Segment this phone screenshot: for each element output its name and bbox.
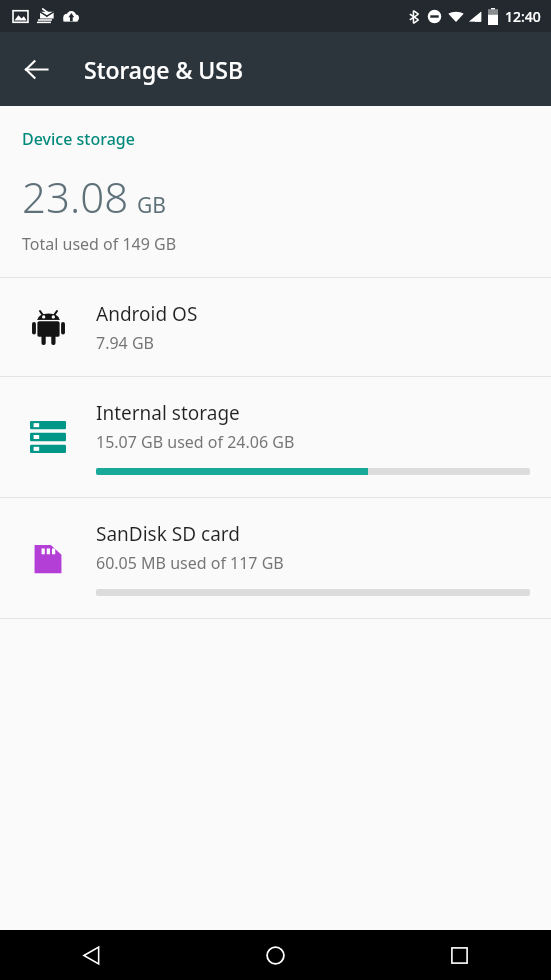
staticText: 60.05 MB used of 117 GB (96, 552, 284, 574)
staticText: Device storage (22, 128, 135, 150)
button[interactable]: SanDisk SD card (0, 498, 551, 618)
button[interactable]: Android OS (0, 278, 551, 376)
staticText: 12:40 (505, 7, 541, 26)
button[interactable]: Back (0, 930, 183, 980)
staticText: SanDisk SD card (96, 521, 240, 547)
staticText: 15.07 GB used of 24.06 GB (96, 431, 295, 453)
staticText: 23.08 (22, 168, 129, 225)
staticText: Android OS (96, 301, 198, 327)
staticText: 7.94 GB (96, 332, 154, 354)
button[interactable]: Internal storage (0, 377, 551, 497)
staticText: Internal storage (96, 400, 240, 426)
button[interactable]: Recents (367, 930, 551, 980)
staticText: GB (137, 191, 166, 220)
staticText: Total used of 149 GB (22, 233, 177, 255)
staticText: Storage & USB (84, 54, 243, 85)
button[interactable]: Back (10, 43, 62, 95)
button[interactable]: Home (183, 930, 367, 980)
